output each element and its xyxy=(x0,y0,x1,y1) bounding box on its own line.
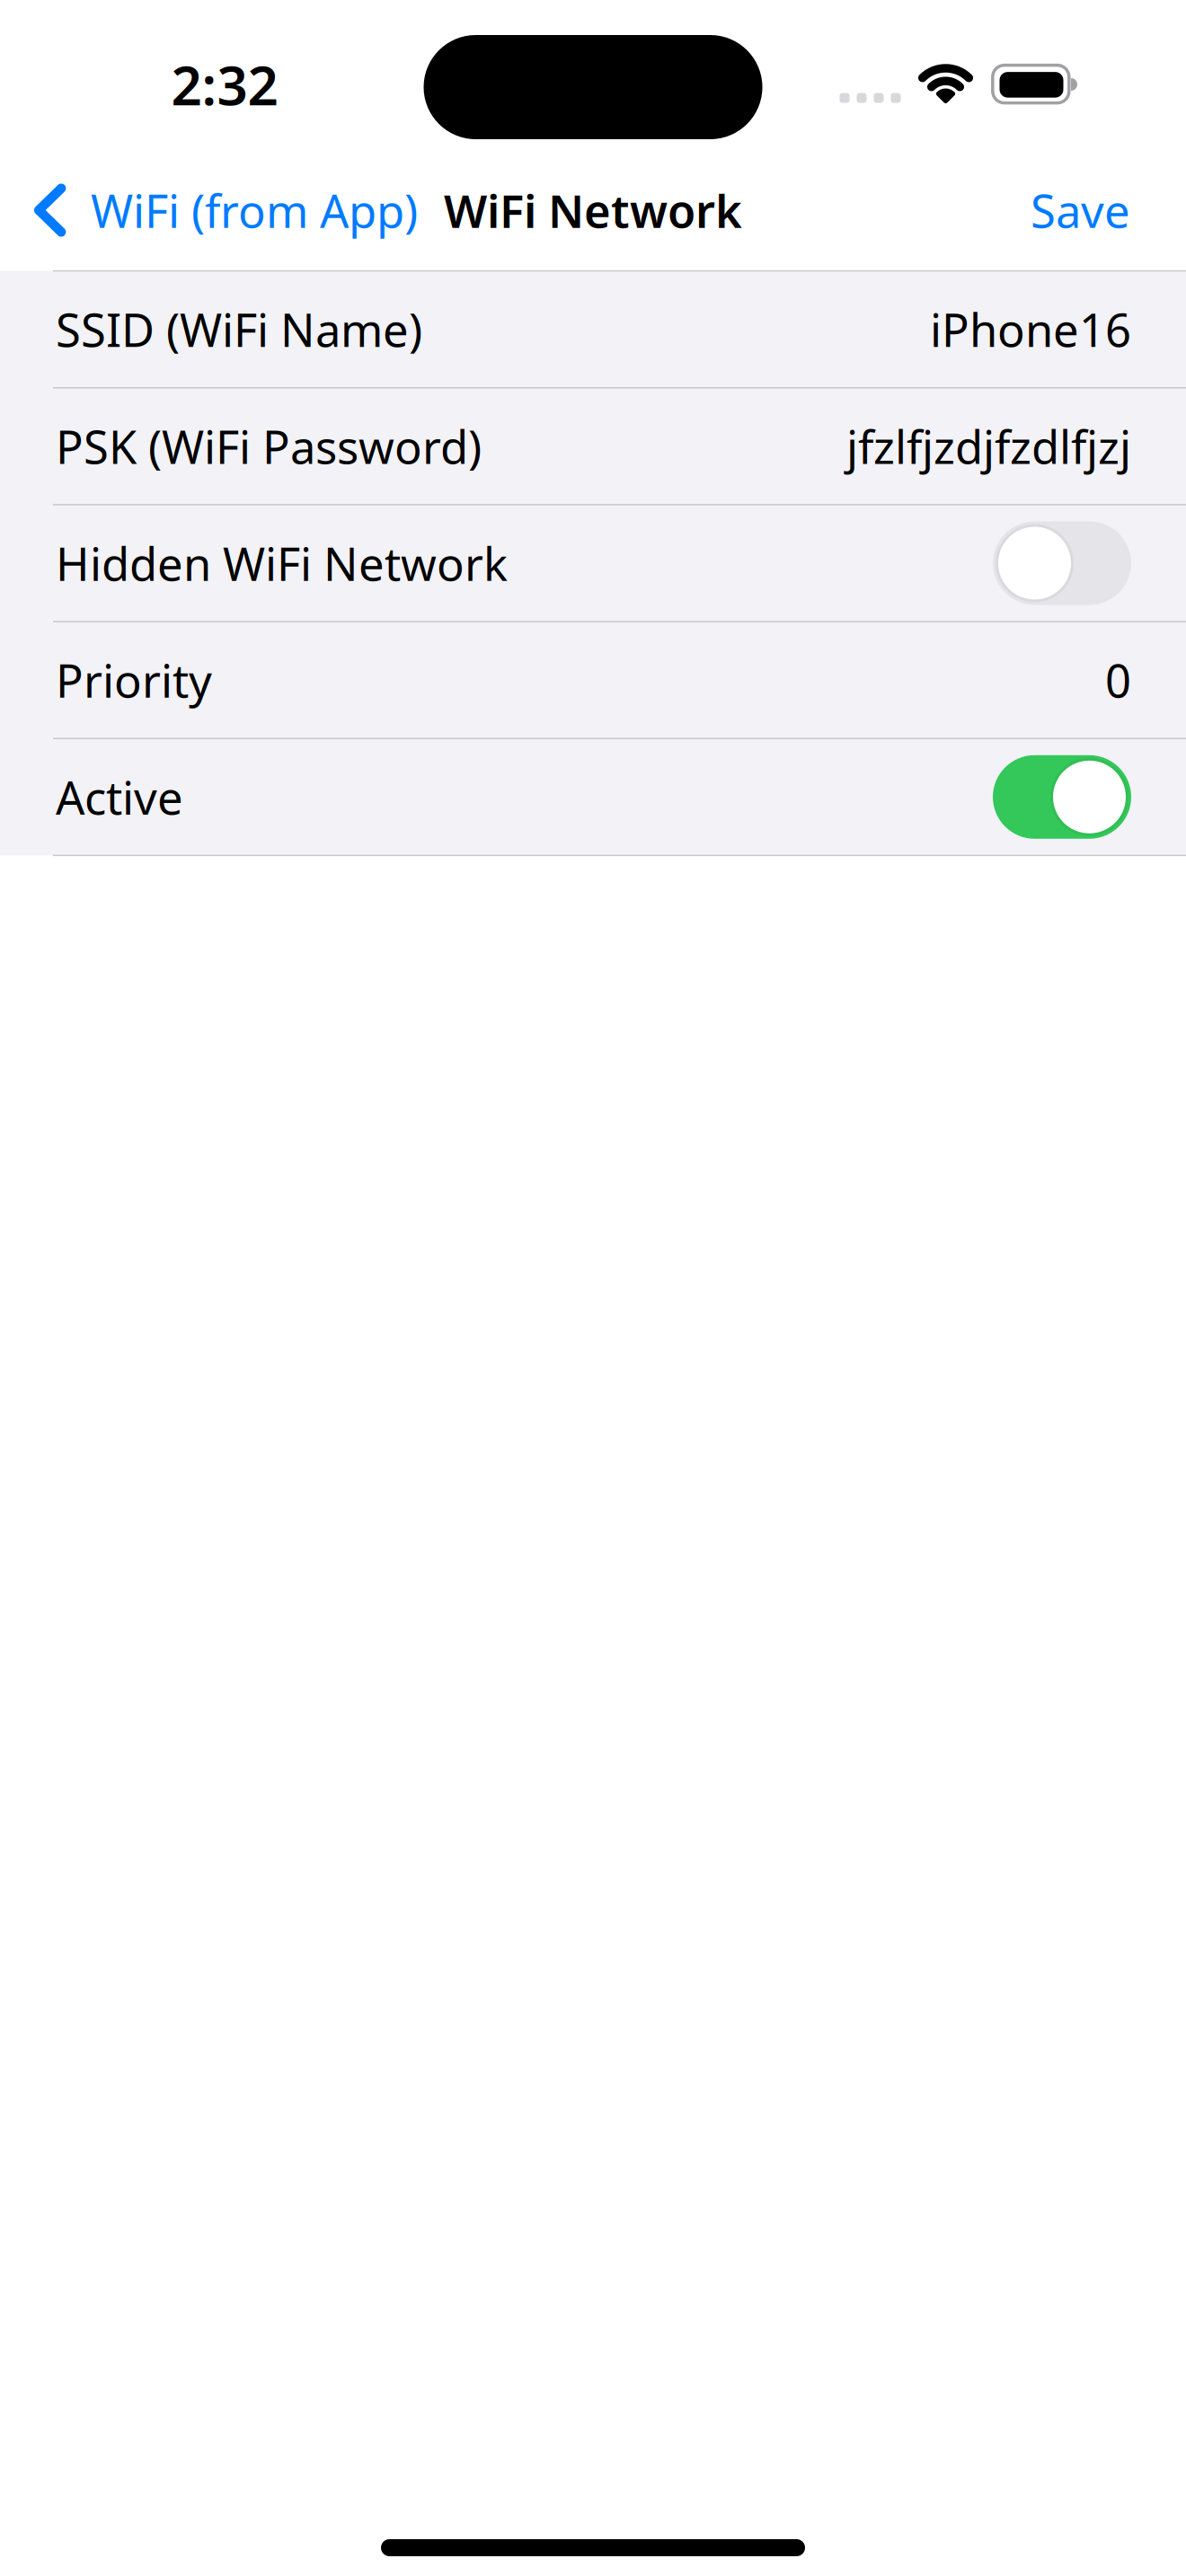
button[interactable]: Priority xyxy=(0,622,1186,739)
staticText: iPhone16 xyxy=(930,299,1131,360)
button[interactable]: Save xyxy=(1031,180,1130,240)
staticText: 2:32 xyxy=(171,49,278,120)
staticText: Active xyxy=(56,767,183,827)
button[interactable]: PSK (WiFi Password) xyxy=(0,388,1186,505)
staticText: Hidden WiFi Network xyxy=(56,533,508,593)
button[interactable]: SSID (WiFi Name) xyxy=(0,271,1186,388)
staticText: 0 xyxy=(1105,650,1131,710)
button[interactable]: Hidden WiFi Network xyxy=(993,521,1131,605)
button[interactable]: Back xyxy=(34,180,418,240)
staticText: jfzlfjzdjfzdlfjzj xyxy=(846,416,1131,476)
staticText: SSID (WiFi Name) xyxy=(56,299,422,360)
staticText: WiFi (from App) xyxy=(91,180,418,240)
staticText: PSK (WiFi Password) xyxy=(56,416,482,476)
button[interactable]: Active xyxy=(993,755,1131,839)
staticText: Save xyxy=(1031,180,1130,240)
staticText: Priority xyxy=(56,650,212,710)
staticText: WiFi Network xyxy=(444,180,742,240)
